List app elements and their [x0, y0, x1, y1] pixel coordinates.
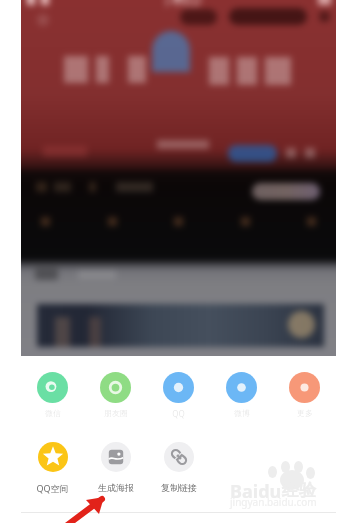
staticText: 朋友圈	[104, 408, 128, 418]
button[interactable]: QQ空间	[21, 442, 84, 494]
staticText: 微信	[45, 408, 61, 418]
staticText: 复制链接	[161, 482, 197, 493]
staticText: 经验	[282, 480, 316, 501]
staticText: 更多	[297, 408, 313, 418]
staticText: Baidu	[230, 479, 282, 504]
button[interactable]: 朋友圈	[84, 372, 147, 418]
staticText: QQ	[172, 408, 185, 419]
button[interactable]: 微信	[21, 372, 84, 418]
button[interactable]: 微博	[210, 372, 273, 418]
staticText: 生成海报	[98, 482, 134, 493]
button[interactable]: 更多	[273, 372, 336, 418]
staticText: QQ空间	[36, 482, 69, 494]
button[interactable]: 生成海报	[84, 442, 147, 493]
staticText: jingyan.baidu.com	[230, 495, 317, 509]
staticText: 下午9:37	[162, 0, 202, 9]
button[interactable]: 复制链接	[147, 442, 210, 493]
button[interactable]: QQ	[147, 372, 210, 419]
staticText: 微博	[234, 408, 250, 418]
